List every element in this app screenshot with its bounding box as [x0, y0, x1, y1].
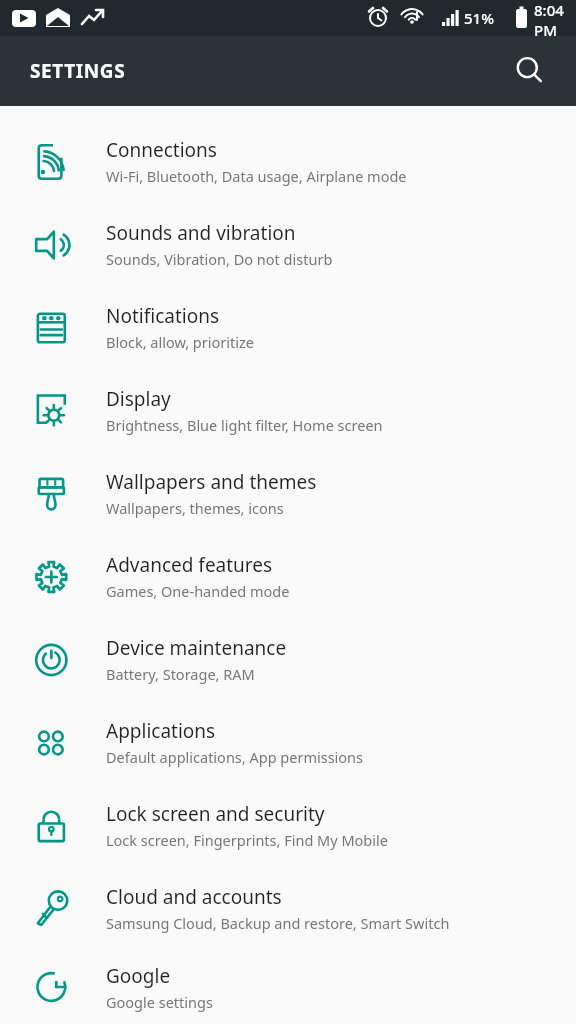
button[interactable]: Cloud and accounts: [0, 867, 576, 950]
button[interactable]: Lock screen and security: [0, 784, 576, 867]
button[interactable]: Notifications: [0, 286, 576, 369]
staticText: 51%: [464, 8, 494, 28]
staticText: Sounds, Vibration, Do not disturb: [106, 249, 333, 269]
staticText: Device maintenance: [106, 635, 287, 661]
button[interactable]: Sounds and vibration: [0, 203, 576, 286]
staticText: Sounds and vibration: [106, 220, 296, 246]
staticText: Lock screen and security: [106, 801, 325, 827]
staticText: Default applications, App permissions: [106, 747, 364, 767]
staticText: Applications: [106, 718, 216, 744]
staticText: SETTINGS: [30, 58, 126, 84]
staticText: Google settings: [106, 992, 213, 1012]
staticText: 8:04 PM: [534, 0, 576, 36]
staticText: Block, allow, prioritize: [106, 332, 254, 352]
staticText: Connections: [106, 137, 217, 163]
button[interactable]: Search: [506, 47, 554, 95]
staticText: Advanced features: [106, 552, 273, 578]
staticText: Google: [106, 963, 171, 989]
button[interactable]: Wallpapers and themes: [0, 452, 576, 535]
button[interactable]: Advanced features: [0, 535, 576, 618]
button[interactable]: Connections: [0, 120, 576, 203]
staticText: Battery, Storage, RAM: [106, 664, 255, 684]
staticText: Samsung Cloud, Backup and restore, Smart…: [106, 913, 450, 933]
button[interactable]: Display: [0, 369, 576, 452]
staticText: Games, One-handed mode: [106, 581, 290, 601]
staticText: Notifications: [106, 303, 220, 329]
staticText: Display: [106, 386, 171, 412]
button[interactable]: Applications: [0, 701, 576, 784]
staticText: Wallpapers, themes, icons: [106, 498, 284, 518]
staticText: Wallpapers and themes: [106, 469, 317, 495]
staticText: Brightness, Blue light filter, Home scre…: [106, 415, 383, 435]
staticText: Cloud and accounts: [106, 884, 282, 910]
staticText: Wi-Fi, Bluetooth, Data usage, Airplane m…: [106, 166, 407, 186]
button[interactable]: Device maintenance: [0, 618, 576, 701]
staticText: Lock screen, Fingerprints, Find My Mobil…: [106, 830, 388, 850]
button[interactable]: Google: [0, 950, 576, 1024]
